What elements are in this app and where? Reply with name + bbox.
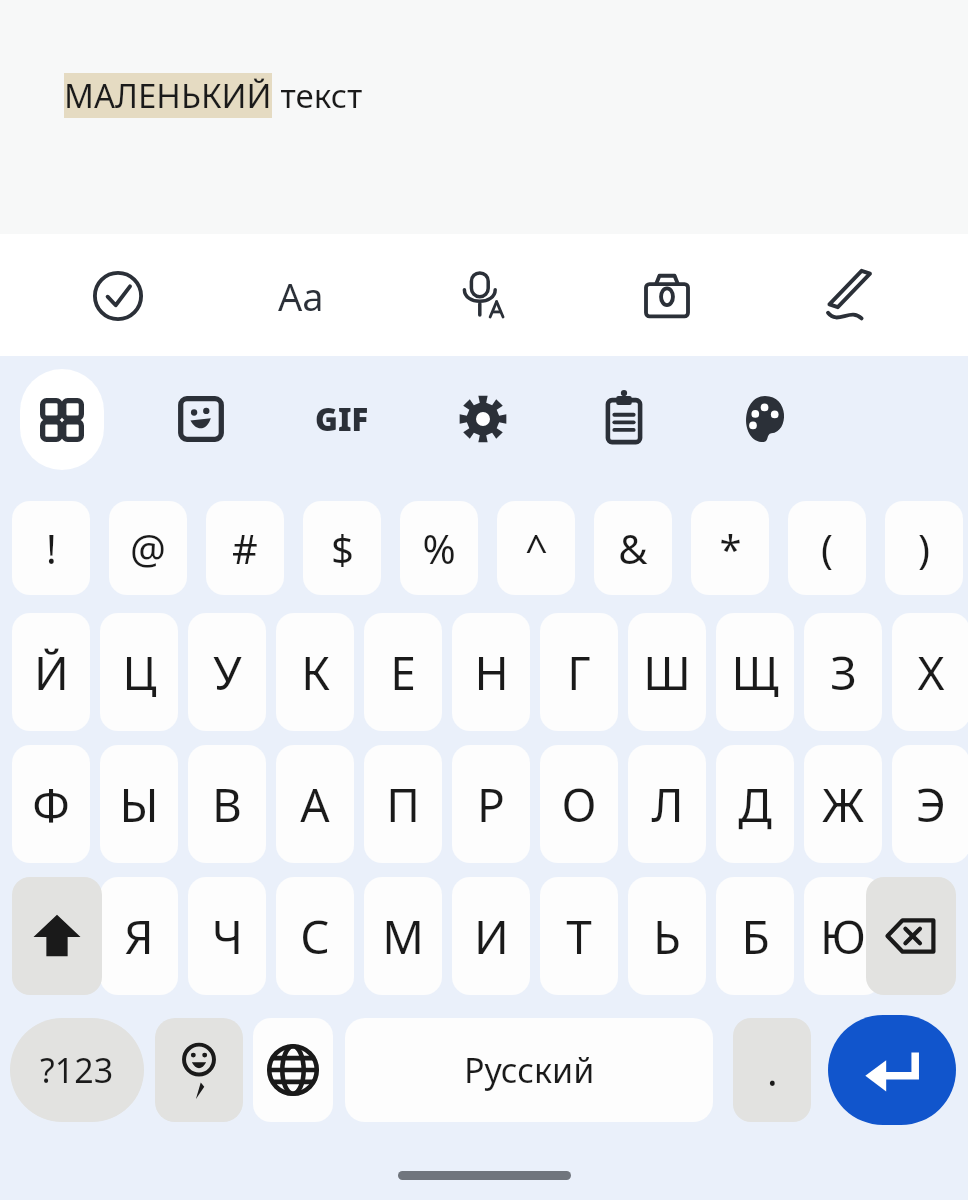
- staticText: ?123: [40, 1047, 114, 1093]
- button[interactable]: Русский: [345, 1018, 713, 1122]
- button[interactable]: Ж: [804, 745, 882, 863]
- button[interactable]: $: [303, 501, 381, 595]
- staticText: ): [918, 521, 930, 575]
- button[interactable]: Stickers: [166, 384, 236, 454]
- button[interactable]: More apps: [20, 369, 104, 470]
- staticText: МАЛЕНЬКИЙ: [64, 73, 272, 118]
- staticText: (: [821, 521, 833, 575]
- staticText: Щ: [731, 641, 779, 704]
- staticText: ^: [525, 521, 548, 575]
- staticText: З: [830, 641, 857, 704]
- button[interactable]: Confirm: [83, 261, 153, 331]
- button[interactable]: Backspace: [866, 877, 956, 995]
- button[interactable]: Shift: [12, 877, 102, 995]
- button[interactable]: *: [691, 501, 769, 595]
- button[interactable]: &: [594, 501, 672, 595]
- button[interactable]: %: [400, 501, 478, 595]
- button[interactable]: Emoji: [155, 1018, 243, 1122]
- button[interactable]: Ю: [804, 877, 882, 995]
- button[interactable]: Settings: [448, 384, 518, 454]
- button[interactable]: Г: [540, 613, 618, 731]
- button[interactable]: Щ: [716, 613, 794, 731]
- staticText: $: [331, 521, 354, 575]
- button[interactable]: Б: [716, 877, 794, 995]
- staticText: В: [212, 773, 242, 836]
- button[interactable]: GIF: [300, 394, 384, 444]
- staticText: К: [301, 641, 330, 704]
- staticText: Ч: [212, 905, 243, 968]
- staticText: Х: [917, 641, 945, 704]
- staticText: %: [422, 521, 456, 575]
- button[interactable]: Ч: [188, 877, 266, 995]
- button[interactable]: Я: [100, 877, 178, 995]
- button[interactable]: К: [276, 613, 354, 731]
- staticText: Т: [566, 905, 592, 968]
- button[interactable]: ^: [497, 501, 575, 595]
- button[interactable]: (: [788, 501, 866, 595]
- staticText: Б: [741, 905, 770, 968]
- button[interactable]: !: [12, 501, 90, 595]
- staticText: Н: [474, 641, 509, 704]
- button[interactable]: З: [804, 613, 882, 731]
- staticText: Г: [567, 641, 591, 704]
- button[interactable]: Ц: [100, 613, 178, 731]
- staticText: М: [382, 905, 424, 968]
- button[interactable]: Clipboard: [589, 384, 659, 454]
- staticText: GIF: [315, 398, 369, 440]
- staticText: .: [767, 1043, 778, 1097]
- staticText: &: [618, 521, 648, 575]
- button[interactable]: Ш: [628, 613, 706, 731]
- button[interactable]: .: [733, 1018, 811, 1122]
- staticText: Ф: [32, 773, 70, 836]
- staticText: Aa: [278, 270, 324, 322]
- button[interactable]: Voice typing: [449, 261, 519, 331]
- button[interactable]: О: [540, 745, 618, 863]
- staticText: Д: [738, 773, 772, 836]
- button[interactable]: В: [188, 745, 266, 863]
- button[interactable]: Ь: [628, 877, 706, 995]
- button[interactable]: И: [452, 877, 530, 995]
- button[interactable]: Enter: [828, 1015, 956, 1125]
- staticText: Ю: [820, 905, 866, 968]
- staticText: Й: [34, 641, 69, 704]
- button[interactable]: Ы: [100, 745, 178, 863]
- button[interactable]: С: [276, 877, 354, 995]
- button[interactable]: М: [364, 877, 442, 995]
- staticText: Ш: [643, 641, 691, 704]
- button[interactable]: Э: [892, 745, 968, 863]
- staticText: Е: [390, 641, 416, 704]
- button[interactable]: У: [188, 613, 266, 731]
- button[interactable]: П: [364, 745, 442, 863]
- button[interactable]: Aa: [257, 268, 345, 324]
- staticText: Э: [916, 773, 946, 836]
- staticText: Ы: [119, 773, 159, 836]
- button[interactable]: ): [885, 501, 963, 595]
- staticText: Ь: [653, 905, 681, 968]
- button[interactable]: Themes: [730, 384, 800, 454]
- staticText: И: [474, 905, 509, 968]
- button[interactable]: Е: [364, 613, 442, 731]
- button[interactable]: @: [109, 501, 187, 595]
- button[interactable]: Н: [452, 613, 530, 731]
- button[interactable]: ?123: [10, 1018, 144, 1122]
- button[interactable]: Camera: [632, 261, 702, 331]
- button[interactable]: Х: [892, 613, 968, 731]
- staticText: Л: [651, 773, 684, 836]
- staticText: #: [232, 521, 258, 575]
- staticText: @: [130, 521, 166, 575]
- button[interactable]: #: [206, 501, 284, 595]
- button[interactable]: Draw: [814, 261, 884, 331]
- button[interactable]: Т: [540, 877, 618, 995]
- button[interactable]: А: [276, 745, 354, 863]
- button[interactable]: Д: [716, 745, 794, 863]
- button[interactable]: Change language: [253, 1018, 333, 1122]
- button[interactable]: Й: [12, 613, 90, 731]
- staticText: текст: [272, 73, 363, 118]
- staticText: Р: [477, 773, 505, 836]
- staticText: Ц: [122, 641, 157, 704]
- button[interactable]: Ф: [12, 745, 90, 863]
- button[interactable]: Л: [628, 745, 706, 863]
- button[interactable]: Р: [452, 745, 530, 863]
- staticText: У: [213, 641, 242, 704]
- staticText: О: [561, 773, 597, 836]
